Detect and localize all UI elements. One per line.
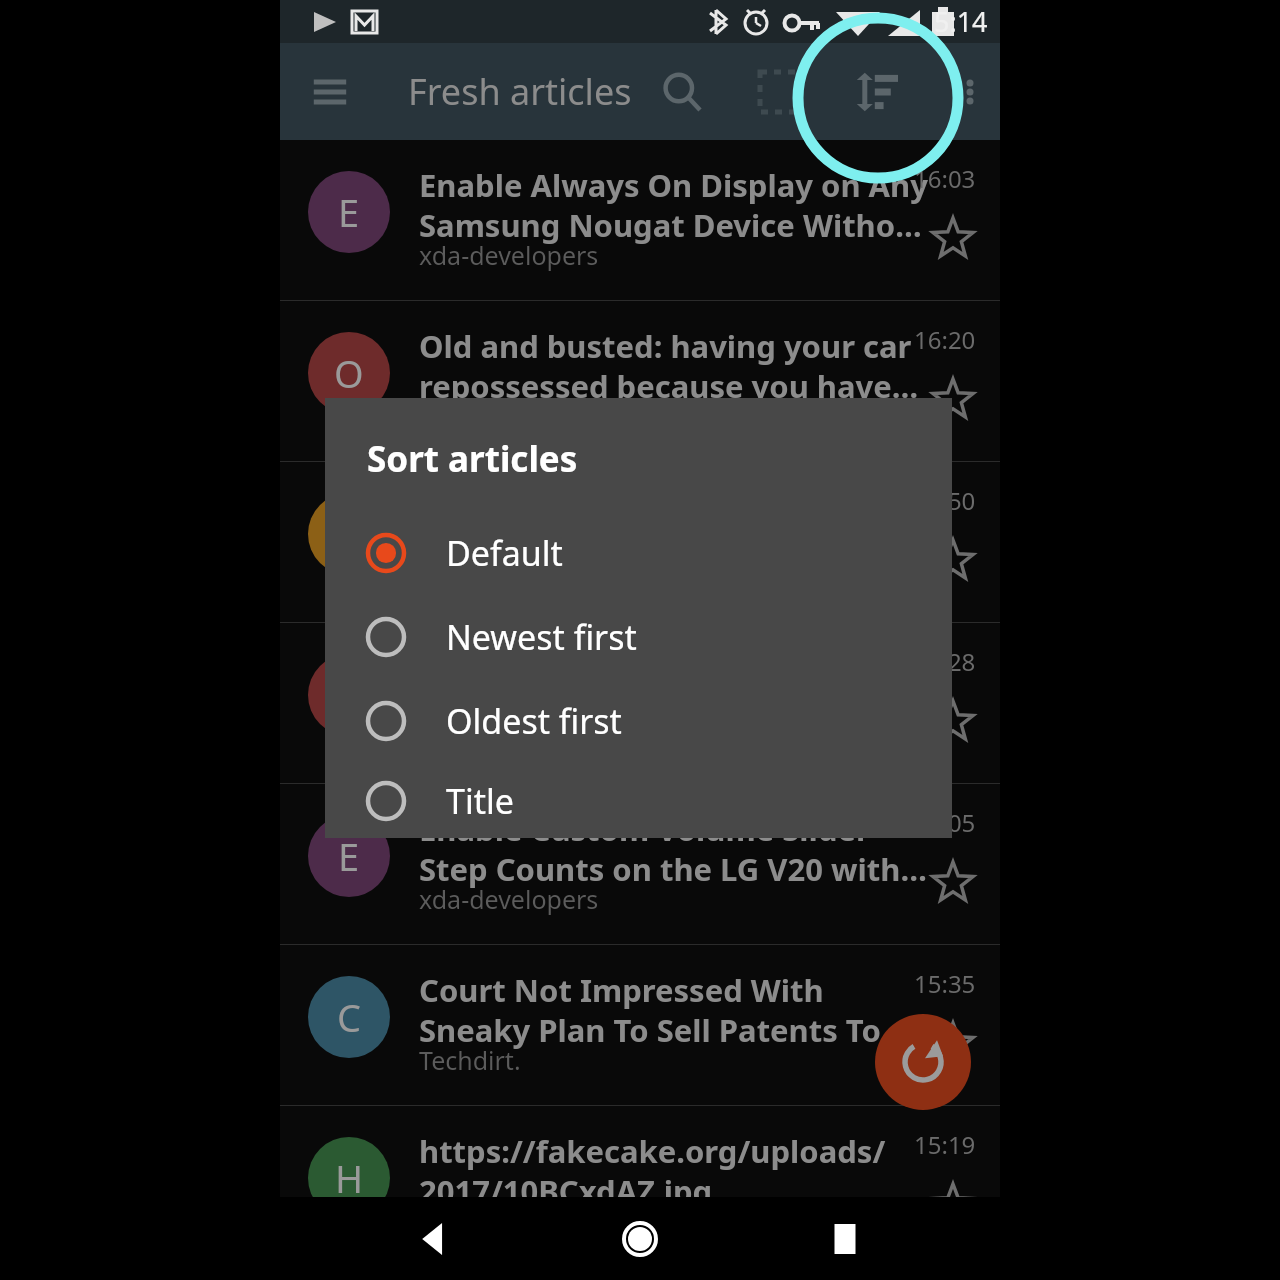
staticText: Android Authority [419, 721, 629, 755]
button[interactable]: Star [926, 534, 980, 588]
staticText: 15:05 [914, 806, 976, 839]
button[interactable]: Star [926, 695, 980, 749]
staticText: 15:19 [914, 1128, 976, 1161]
staticText: Samsung Galaxy S8 rumored to ship with n… [419, 647, 929, 729]
staticText: Enable Always On Display on Any Samsung … [419, 164, 929, 246]
staticText: Fresh articles [408, 67, 632, 116]
button[interactable]: E [280, 140, 1000, 300]
staticText: Hacker News [419, 1204, 573, 1238]
button[interactable]: Menu [298, 60, 362, 124]
staticText: https://fakecake.org/uploads/2017/10BCxd… [419, 1130, 929, 1212]
button[interactable]: E [280, 784, 1000, 944]
staticText: 16:03 [914, 162, 976, 195]
staticText: xda-developers [419, 238, 599, 272]
staticText: Newest first [446, 614, 637, 660]
staticText: Techdirt. [419, 1043, 521, 1077]
staticText: Old and busted: having your car reposses… [419, 325, 929, 407]
staticText: 15:35 [914, 967, 976, 1000]
staticText: E [338, 186, 360, 238]
button[interactable]: Sort [846, 60, 910, 124]
button[interactable]: Newest first [325, 595, 952, 679]
button[interactable]: More options [942, 64, 998, 120]
button[interactable]: Search [650, 60, 714, 124]
button[interactable]: Default [325, 511, 952, 595]
button[interactable]: Star [926, 856, 980, 910]
button[interactable]: Star [926, 373, 980, 427]
staticText: Enable Custom Volume Slider Step Counts … [419, 808, 929, 890]
staticText: 15:50 [914, 484, 976, 517]
staticText: Oldest first [446, 698, 622, 744]
button[interactable]: H [280, 1106, 1000, 1197]
staticText: Instagram Stories brings cross-posting t… [419, 486, 929, 568]
button[interactable]: S [280, 623, 1000, 783]
button[interactable]: Title [325, 763, 952, 838]
button[interactable]: I [280, 462, 1000, 622]
button[interactable]: Star [926, 212, 980, 266]
staticText: 5:14 [934, 3, 988, 40]
staticText: 15:28 [914, 645, 976, 678]
staticText: Title [446, 778, 514, 824]
button[interactable]: Home [605, 1204, 675, 1274]
staticText: Sort articles [367, 435, 578, 483]
staticText: 16:20 [914, 323, 976, 356]
staticText: Android Police [419, 560, 589, 594]
button[interactable]: Star [926, 1178, 980, 1232]
button[interactable]: Recents [810, 1204, 880, 1274]
staticText: H [335, 1152, 364, 1204]
button[interactable]: Back [400, 1204, 470, 1274]
button[interactable]: Select [748, 60, 812, 124]
button[interactable]: Refresh [875, 1014, 971, 1110]
staticText: Default [446, 530, 563, 576]
staticText: O [334, 347, 364, 399]
button[interactable]: C [280, 945, 1000, 1105]
button[interactable]: Oldest first [325, 679, 952, 763]
staticText: C [337, 991, 362, 1043]
staticText: xda-developers [419, 882, 599, 916]
button[interactable]: O [280, 301, 1000, 461]
staticText: Court Not Impressed With Sneaky Plan To … [419, 969, 929, 1051]
button[interactable]: Star [926, 1017, 980, 1071]
staticText: E [338, 830, 360, 882]
